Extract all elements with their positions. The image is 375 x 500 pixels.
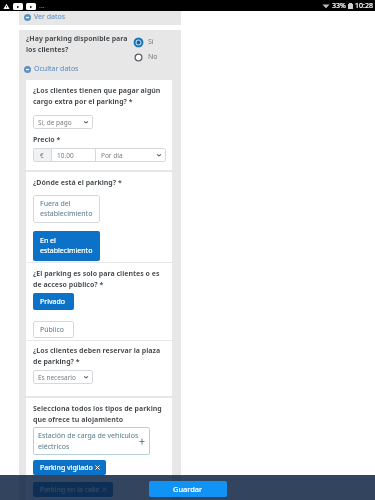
button[interactable]: Sí, de pago <box>33 115 93 129</box>
button[interactable]: Ocultar datos <box>24 63 79 75</box>
staticText: Ver datos <box>34 12 66 22</box>
staticText: establecimiento <box>40 209 93 219</box>
button[interactable]: No <box>133 51 158 63</box>
staticText: Parking en la calle <box>40 485 100 495</box>
staticText: Guardar <box>173 484 203 494</box>
button[interactable]: Es necesario <box>33 370 93 384</box>
staticText: Ocultar datos <box>34 64 79 74</box>
staticText: establecimiento <box>40 246 93 256</box>
button[interactable]: Por día <box>96 148 166 162</box>
staticText: Selecciona todos los tipos de parking qu… <box>33 404 162 424</box>
staticText: Sí, de pago <box>38 118 72 127</box>
button[interactable]: Estación de carga de vehículos eléctrico… <box>33 427 150 455</box>
staticText: ¿Los clientes tienen que pagar algún car… <box>33 86 161 106</box>
button[interactable]: Parking vigilado <box>33 460 106 475</box>
staticText: Es necesario <box>38 373 76 382</box>
staticText: Por día <box>101 151 123 160</box>
staticText: Fuera del <box>40 199 71 209</box>
staticText: No <box>148 52 158 62</box>
staticText: En el <box>40 236 56 246</box>
button[interactable]: Guardar <box>149 481 227 497</box>
button[interactable]: Público <box>33 321 74 338</box>
staticText: Precio * <box>33 135 61 145</box>
staticText: ... <box>39 1 45 11</box>
staticText: ¿Dónde está el parking? * <box>33 178 122 188</box>
button[interactable]: Fuera del <box>33 195 100 223</box>
staticText: € <box>40 151 44 160</box>
button[interactable]: En el <box>33 231 100 261</box>
staticText: ¿Los clientes deben reservar la plaza de… <box>33 346 161 366</box>
staticText: ¿El parking es solo para clientes o es d… <box>33 269 160 289</box>
button[interactable]: ¿Hay parking disponible para los cliente… <box>26 34 172 61</box>
staticText: Privado <box>40 297 65 307</box>
staticText: Estación de carga de vehículos eléctrico… <box>38 431 139 451</box>
staticText: Parking vigilado <box>40 463 93 473</box>
button[interactable]: Parking en la calle <box>33 482 113 497</box>
staticText: 33% <box>332 1 346 11</box>
staticText: 10.00 <box>57 151 74 160</box>
button[interactable]: Sí <box>133 36 154 48</box>
button[interactable]: Ver datos <box>24 11 66 23</box>
staticText: ¿Hay parking disponible para los cliente… <box>26 34 132 54</box>
staticText: Público <box>40 325 65 335</box>
staticText: Sí <box>148 37 154 47</box>
button[interactable]: Privado <box>33 293 74 310</box>
staticText: 10:28 <box>355 1 373 11</box>
